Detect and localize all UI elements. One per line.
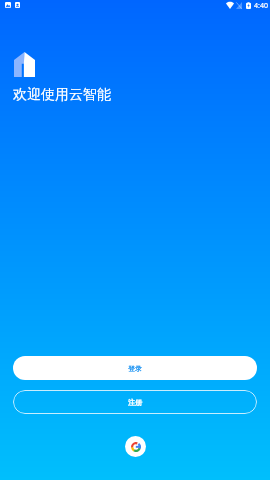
staticText: 欢迎使用云智能 [13,86,111,104]
button[interactable]: 登录 [13,356,257,380]
button[interactable]: Sign in with Google [125,436,146,457]
staticText: 登录 [128,364,142,373]
button[interactable]: 注册 [13,390,257,414]
staticText: 4:40 [254,1,268,11]
staticText: 注册 [128,398,142,407]
